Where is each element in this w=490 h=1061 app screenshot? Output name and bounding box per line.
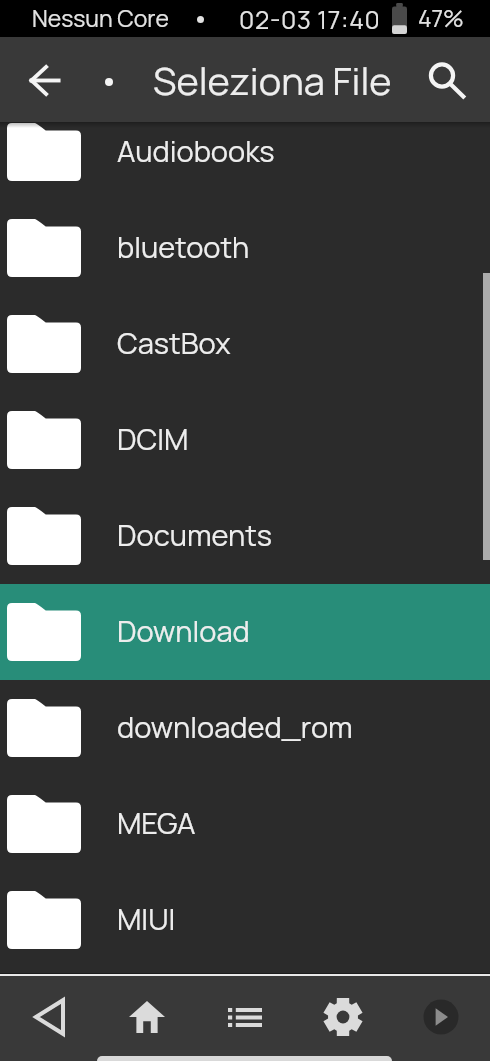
button[interactable]: Play (392, 986, 490, 1048)
staticText: Audiobooks (117, 131, 275, 171)
staticText: Download (117, 611, 250, 651)
staticText: Nessun Core (32, 2, 169, 33)
button[interactable]: Audiobooks (0, 104, 490, 200)
staticText: Seleziona File (153, 54, 392, 106)
button[interactable]: Documents (0, 488, 490, 584)
button[interactable]: Download (0, 584, 490, 680)
button[interactable]: downloaded_rom (0, 680, 490, 776)
button[interactable]: Back (15, 51, 73, 109)
button[interactable]: MEGA (0, 776, 490, 872)
button[interactable]: DCIM (0, 392, 490, 488)
staticText: 47% (418, 2, 464, 33)
staticText: MEGA (117, 803, 196, 843)
staticText: bluetooth (117, 227, 250, 267)
button[interactable]: bluetooth (0, 200, 490, 296)
button[interactable]: Home (98, 986, 196, 1048)
staticText: DCIM (117, 419, 189, 459)
staticText: 02-03 17:40 (239, 2, 381, 36)
staticText: downloaded_rom (117, 707, 353, 747)
staticText: MIUI (117, 899, 176, 939)
button[interactable]: Recent apps (196, 986, 294, 1048)
button[interactable]: Settings (294, 986, 392, 1048)
button[interactable]: Search (414, 47, 470, 103)
button[interactable]: MIUI (0, 872, 490, 955)
button[interactable]: CastBox (0, 296, 490, 392)
staticText: CastBox (117, 323, 231, 363)
staticText: Documents (117, 515, 272, 555)
button[interactable]: Back (0, 986, 98, 1048)
